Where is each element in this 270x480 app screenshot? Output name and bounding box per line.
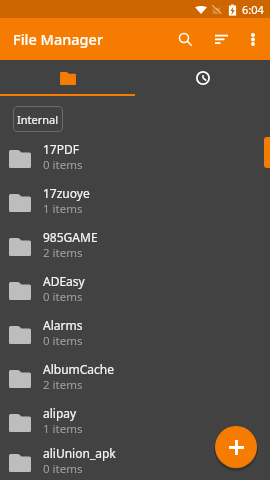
button[interactable]: Add bbox=[215, 426, 257, 468]
staticText: 6:04 bbox=[242, 2, 264, 17]
staticText: 0 items bbox=[43, 157, 83, 173]
button[interactable]: More options bbox=[236, 22, 270, 56]
staticText: AlbumCache bbox=[43, 361, 115, 377]
staticText: 2 items bbox=[43, 377, 83, 393]
button[interactable]: ADEasy bbox=[0, 269, 270, 313]
staticText: 0 items bbox=[43, 289, 83, 305]
staticText: File Manager bbox=[13, 29, 104, 49]
staticText: Internal bbox=[17, 112, 59, 127]
staticText: 1 items bbox=[43, 421, 83, 437]
button[interactable]: 17PDF bbox=[0, 137, 270, 181]
staticText: 0 items bbox=[43, 333, 83, 349]
button[interactable]: Sort bbox=[204, 22, 238, 56]
staticText: 0 items bbox=[43, 461, 83, 476]
button[interactable]: Internal bbox=[13, 106, 63, 132]
staticText: 985GAME bbox=[43, 229, 98, 245]
staticText: ADEasy bbox=[43, 273, 85, 289]
button[interactable]: alipay bbox=[0, 401, 270, 445]
button[interactable]: Alarms bbox=[0, 313, 270, 357]
staticText: 17zuoye bbox=[43, 185, 90, 201]
staticText: 17PDF bbox=[43, 141, 79, 157]
button[interactable]: Folders bbox=[0, 60, 135, 96]
button[interactable]: aliUnion_apk bbox=[0, 445, 270, 480]
button[interactable]: AlbumCache bbox=[0, 357, 270, 401]
staticText: 2 items bbox=[43, 245, 83, 261]
button[interactable]: Recent bbox=[135, 60, 270, 96]
staticText: aliUnion_apk bbox=[43, 445, 116, 461]
staticText: alipay bbox=[43, 405, 77, 421]
staticText: Alarms bbox=[43, 317, 83, 333]
button[interactable]: Search bbox=[168, 22, 203, 57]
staticText: 1 items bbox=[43, 201, 83, 217]
button[interactable]: 17zuoye bbox=[0, 181, 270, 225]
button[interactable]: 985GAME bbox=[0, 225, 270, 269]
